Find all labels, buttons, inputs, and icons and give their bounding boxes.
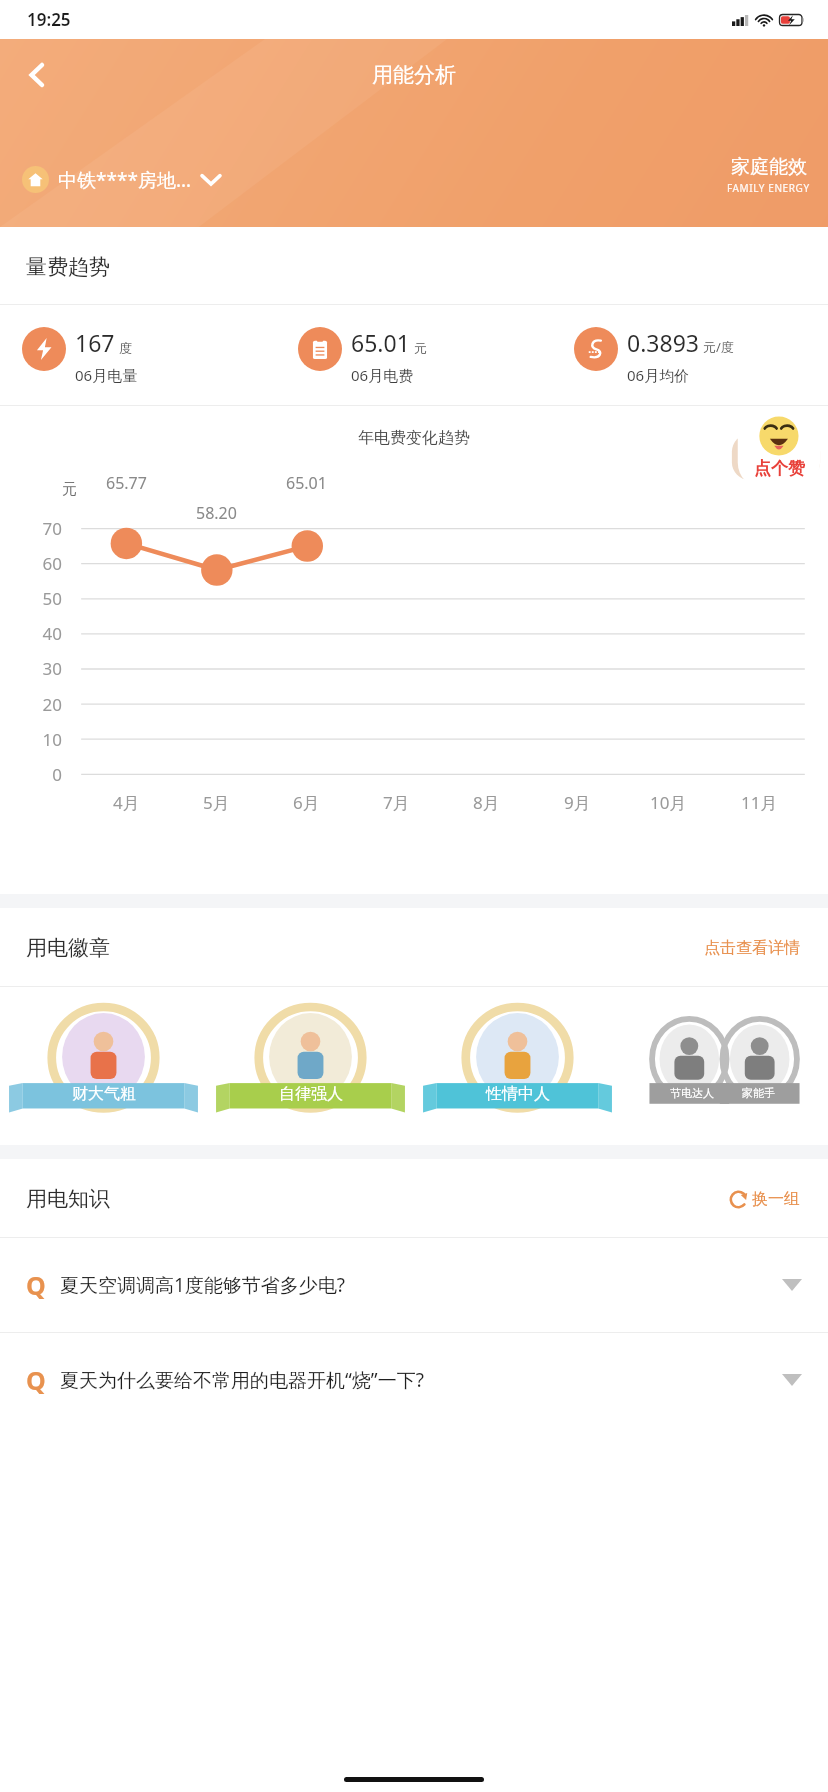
staticText: 06月均价 — [627, 365, 690, 385]
staticText: 6月 — [293, 791, 320, 814]
staticText: 10月 — [650, 791, 687, 814]
staticText: 家能手 — [742, 1086, 775, 1100]
staticText: 06月电量 — [75, 365, 138, 385]
staticText: 60 — [0, 552, 62, 575]
staticText: 9月 — [564, 791, 591, 814]
staticText: 财大气粗 — [72, 1084, 136, 1104]
button[interactable]: 中铁****房地… — [18, 162, 224, 197]
staticText: 元 — [414, 340, 427, 356]
staticText: 元 — [62, 480, 77, 499]
staticText: 7月 — [383, 791, 410, 814]
button[interactable]: 点击查看详情 — [700, 934, 804, 962]
staticText: 06月电费 — [351, 365, 414, 385]
button[interactable]: 财大气粗 — [0, 1007, 207, 1125]
staticText: 换一组 — [752, 1189, 800, 1209]
staticText: 点击查看详情 — [704, 938, 800, 958]
staticText: FAMILY ENERGY — [727, 181, 810, 195]
button[interactable]: 换一组 — [725, 1185, 804, 1213]
staticText: 用能分析 — [372, 62, 456, 88]
button[interactable]: 节电达人 当家能手 — [621, 1007, 828, 1125]
button[interactable]: Back — [10, 47, 66, 103]
staticText: 夏天空调调高1度能够节省多少电? — [60, 1272, 782, 1298]
staticText: 用电徽章 — [26, 935, 110, 961]
staticText: 70 — [0, 517, 62, 540]
staticText: 65.77 — [106, 472, 147, 494]
staticText: 40 — [0, 622, 62, 645]
staticText: 点个赞 — [754, 458, 805, 479]
button[interactable]: 性情中人 — [414, 1007, 621, 1125]
staticText: 0 — [0, 763, 62, 786]
staticText: 度 — [119, 340, 132, 356]
button[interactable]: 点个赞 — [726, 406, 824, 506]
staticText: 家庭能效 — [731, 155, 807, 179]
staticText: 19:25 — [27, 8, 71, 31]
button[interactable]: 电量 — [736, 419, 808, 457]
button[interactable]: Q — [0, 1238, 828, 1332]
staticText: 10 — [0, 728, 62, 751]
staticText: 自律强人 — [279, 1084, 343, 1104]
staticText: 4月 — [113, 791, 140, 814]
staticText: Q — [26, 1363, 46, 1397]
staticText: 元/度 — [703, 338, 734, 356]
staticText: 量费趋势 — [26, 254, 110, 280]
button[interactable]: 自律强人 — [207, 1007, 414, 1125]
staticText: 11月 — [741, 791, 778, 814]
staticText: 167 — [75, 327, 115, 358]
staticText: 58.20 — [196, 502, 237, 524]
staticText: Q — [26, 1268, 46, 1302]
staticText: 8月 — [473, 791, 500, 814]
staticText: 30 — [0, 657, 62, 680]
staticText: 电量 — [757, 429, 787, 448]
staticText: 65.01 — [351, 327, 410, 358]
staticText: 夏天为什么要给不常用的电器开机“烧”一下? — [60, 1367, 782, 1393]
button[interactable]: Q — [0, 1333, 828, 1427]
staticText: 5月 — [203, 791, 230, 814]
staticText: 用电知识 — [26, 1186, 110, 1212]
staticText: 年电费变化趋势 — [358, 428, 470, 448]
staticText: 65.01 — [286, 472, 327, 494]
staticText: 性情中人 — [486, 1084, 550, 1104]
staticText: 0.3893 — [627, 327, 699, 358]
staticText: 20 — [0, 693, 62, 716]
staticText: 节电达人 — [670, 1086, 714, 1100]
staticText: 50 — [0, 587, 62, 610]
staticText: 中铁****房地… — [58, 167, 191, 193]
